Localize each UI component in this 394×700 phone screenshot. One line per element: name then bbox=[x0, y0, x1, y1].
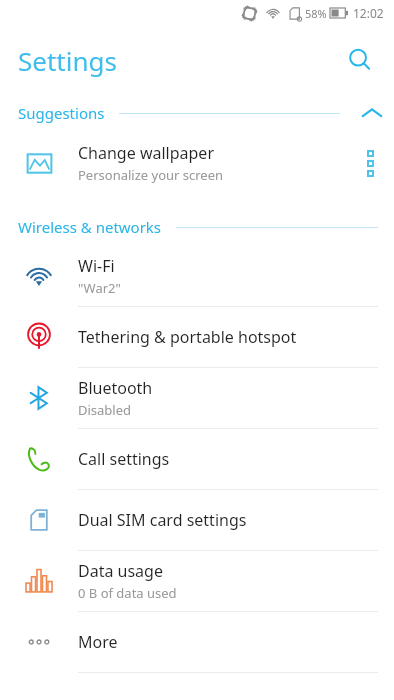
staticText: Tethering & portable hotspot bbox=[78, 326, 297, 348]
staticText: Settings bbox=[18, 43, 117, 78]
button[interactable]: Collapse suggestions bbox=[350, 94, 394, 132]
staticText: Bluetooth bbox=[78, 377, 153, 399]
staticText: Personalize your screen bbox=[78, 166, 224, 184]
staticText: More bbox=[78, 631, 118, 653]
button[interactable]: Wi-Fi bbox=[0, 246, 394, 306]
staticText: Call settings bbox=[78, 448, 170, 470]
staticText: Suggestions bbox=[18, 103, 105, 123]
button[interactable]: Change wallpaper bbox=[0, 132, 394, 194]
staticText: 12:02 bbox=[353, 5, 384, 21]
button[interactable]: More options bbox=[346, 132, 394, 194]
button[interactable]: Bluetooth bbox=[0, 368, 394, 428]
staticText: Change wallpaper bbox=[78, 142, 214, 164]
button[interactable]: More bbox=[0, 612, 394, 672]
staticText: Data usage bbox=[78, 560, 163, 582]
button[interactable]: Call settings bbox=[0, 429, 394, 489]
staticText: 0 B of data used bbox=[78, 584, 177, 602]
button[interactable]: Search bbox=[336, 36, 384, 84]
staticText: Wireless & networks bbox=[18, 217, 162, 237]
button[interactable]: Data usage bbox=[0, 551, 394, 611]
staticText: Dual SIM card settings bbox=[78, 509, 247, 531]
staticText: Disabled bbox=[78, 401, 132, 419]
button[interactable]: Tethering & portable hotspot bbox=[0, 307, 394, 367]
staticText: Wi-Fi bbox=[78, 255, 115, 277]
staticText: "War2" bbox=[78, 279, 121, 297]
staticText: 58% bbox=[305, 6, 327, 21]
button[interactable]: Dual SIM card settings bbox=[0, 490, 394, 550]
